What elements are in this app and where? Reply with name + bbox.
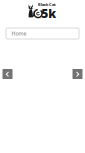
staticText: Home — [11, 30, 26, 37]
button[interactable]: Home — [6, 28, 79, 39]
staticText: 5k — [41, 5, 56, 21]
staticText: Black Cat — [38, 2, 56, 7]
button[interactable]: Next slide — [72, 69, 82, 79]
button[interactable]: Previous slide — [2, 69, 12, 79]
